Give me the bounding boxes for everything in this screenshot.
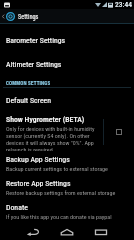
button[interactable]: Donate bbox=[0, 199, 134, 223]
button[interactable]: Barometer Settings bbox=[0, 28, 134, 52]
staticText: Donate bbox=[6, 203, 28, 212]
staticText: Show Hygrometer (BETA) bbox=[6, 115, 85, 124]
staticText: Barometer Settings bbox=[6, 36, 66, 45]
staticText: COMMON SETTINGS bbox=[6, 80, 51, 86]
staticText: 23:44 bbox=[115, 0, 132, 9]
button[interactable]: Default Screen bbox=[0, 88, 134, 112]
staticText: Backup current settings to external stor… bbox=[6, 165, 108, 172]
button[interactable]: Navigate up bbox=[0, 9, 16, 23]
button[interactable]: Altimeter Settings bbox=[0, 52, 134, 76]
staticText: If you like this app you can donate via … bbox=[6, 213, 112, 220]
staticText: Settings bbox=[18, 13, 39, 20]
button[interactable]: Show Hygrometer (BETA) bbox=[0, 112, 134, 151]
staticText: Default Screen bbox=[6, 96, 51, 105]
button[interactable]: Back bbox=[16, 224, 50, 240]
staticText: Backup App Settings bbox=[6, 155, 70, 164]
staticText: Restore backup settings from external st… bbox=[6, 189, 116, 196]
staticText: Only for devices with built-in humidity … bbox=[6, 125, 97, 151]
button[interactable]: Recent apps bbox=[84, 224, 118, 240]
button[interactable]: Home bbox=[50, 224, 84, 240]
button[interactable]: Backup App Settings bbox=[0, 151, 134, 175]
staticText: Restore App Settings bbox=[6, 179, 71, 188]
staticText: Altimeter Settings bbox=[6, 60, 62, 69]
button[interactable]: Restore App Settings bbox=[0, 175, 134, 199]
